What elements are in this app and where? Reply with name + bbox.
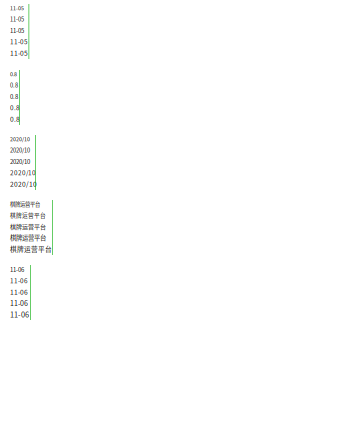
staticText: 11-06 xyxy=(10,298,28,308)
staticText: 2020/10 xyxy=(10,146,30,154)
staticText: 11-06 xyxy=(10,287,28,297)
staticText: 11-05 xyxy=(10,26,24,35)
staticText: 11-06 xyxy=(10,265,24,274)
staticText: 0.8 xyxy=(10,81,18,89)
staticText: 0.8 xyxy=(10,70,17,78)
staticText: 棋牌运营平台 xyxy=(10,200,40,208)
staticText: 2020/10 xyxy=(10,179,37,189)
staticText: 2020/10 xyxy=(10,157,30,166)
staticText: 棋牌运营平台 xyxy=(10,222,46,231)
staticText: 0.8 xyxy=(10,92,18,101)
staticText: 11-06 xyxy=(10,276,28,285)
staticText: 11-05 xyxy=(10,15,24,23)
staticText: 棋牌运营平台 xyxy=(10,244,52,254)
staticText: 11-05 xyxy=(10,4,24,12)
staticText: 0.8 xyxy=(10,114,20,124)
staticText: 11-06 xyxy=(10,309,29,320)
staticText: 0.8 xyxy=(10,103,20,112)
staticText: 棋牌运营平台 xyxy=(10,211,46,219)
staticText: 11-05 xyxy=(10,48,28,58)
staticText: 棋牌运营平台 xyxy=(10,233,46,242)
staticText: 2020/10 xyxy=(10,168,36,177)
staticText: 11-05 xyxy=(10,37,28,46)
staticText: 2020/10 xyxy=(10,135,30,143)
